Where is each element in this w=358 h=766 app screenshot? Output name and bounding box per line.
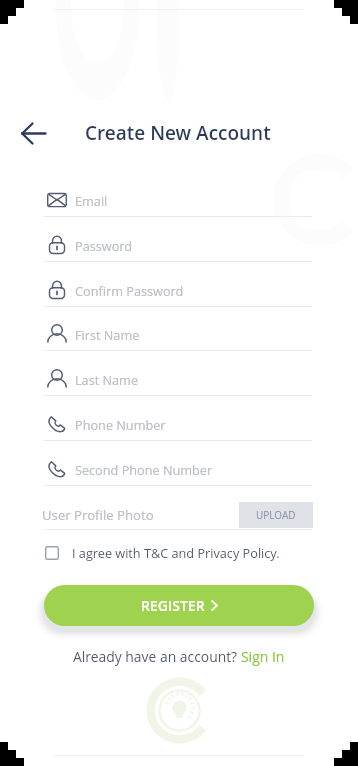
button[interactable]: UPLOAD bbox=[239, 502, 313, 528]
staticText: Second Phone Number bbox=[75, 461, 213, 478]
staticText: UPLOAD bbox=[256, 508, 296, 522]
button[interactable]: I agree with T&C and Privacy Policy. bbox=[45, 544, 280, 562]
staticText: REGISTER bbox=[141, 596, 205, 615]
button[interactable]: Second Phone Number bbox=[44, 448, 312, 486]
staticText: Password bbox=[75, 237, 133, 254]
staticText: User Profile Photo bbox=[42, 506, 154, 524]
staticText: Phone Number bbox=[75, 416, 166, 433]
staticText: I agree with T&C and Privacy Policy. bbox=[72, 544, 280, 561]
staticText: Email bbox=[75, 192, 108, 209]
button[interactable]: Confirm Password bbox=[44, 269, 312, 307]
button[interactable]: Back bbox=[13, 113, 53, 153]
button[interactable]: First Name bbox=[44, 313, 312, 351]
button[interactable]: Email bbox=[44, 179, 312, 217]
staticText: Last Name bbox=[75, 371, 139, 388]
staticText: Already have an account? bbox=[73, 647, 241, 666]
button[interactable]: Last Name bbox=[44, 358, 312, 396]
button[interactable]: Sign In bbox=[241, 647, 285, 666]
staticText: Sign In bbox=[241, 647, 285, 666]
staticText: Create New Account bbox=[85, 120, 271, 146]
button[interactable]: Phone Number bbox=[44, 403, 312, 441]
staticText: Confirm Password bbox=[75, 282, 184, 299]
button[interactable]: REGISTER bbox=[44, 585, 314, 626]
button[interactable]: Password bbox=[44, 224, 312, 262]
staticText: First Name bbox=[75, 326, 140, 343]
